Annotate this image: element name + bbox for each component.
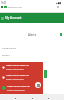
staticText: example.com: [8, 6, 22, 9]
staticText: ▴●▮: [56, 1, 62, 4]
staticText: Recent: [2, 53, 10, 56]
staticText: amet consectetur: [6, 78, 24, 81]
staticText: Lorem ipsum dolor sit: [6, 64, 29, 67]
button[interactable]: Lorem ipsum dolor sit: [0, 72, 64, 82]
button[interactable]: Lorem ipsum dolor sit: [0, 82, 64, 94]
staticText: Notifications: [2, 46, 17, 49]
staticText: Lorem ipsum dolor sit: [7, 85, 30, 88]
button[interactable]: example.com: [0, 5, 64, 9]
other: Menu: [1, 17, 4, 20]
staticText: Lorem ipsum dolor sit: [6, 74, 29, 77]
staticText: amet consectetur: [6, 68, 24, 71]
staticText: Alerts: [28, 33, 37, 37]
staticText: amet consectetur: [7, 89, 25, 92]
staticText: 9:41: [1, 1, 7, 5]
staticText: My Account: [5, 16, 22, 20]
button[interactable]: Compose: [35, 82, 41, 88]
button[interactable]: Lorem ipsum dolor sit: [0, 62, 64, 72]
